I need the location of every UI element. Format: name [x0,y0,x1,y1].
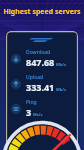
staticText: Ms/s [33,112,43,117]
other: Upload [11,79,21,89]
staticText: Highest speed servers [3,7,81,17]
other: Ping [11,104,21,114]
other: Download [11,54,21,64]
staticText: Mb/s [56,62,66,67]
staticText: Download [26,49,51,56]
staticText: Upload [26,74,44,81]
staticText: Ping [26,99,37,106]
staticText: Mb/s [56,87,66,92]
staticText: 3 [26,106,32,118]
staticText: 333.41 [26,81,55,93]
button[interactable]: Download [6,31,78,150]
staticText: 847.68 [26,56,55,68]
